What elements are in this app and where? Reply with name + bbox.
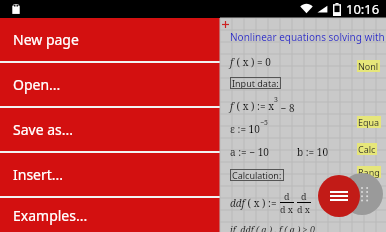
staticText: d x bbox=[297, 203, 311, 215]
staticText: Rang bbox=[358, 166, 380, 178]
button[interactable]: Menu bbox=[318, 175, 360, 217]
button[interactable]: Insert... bbox=[0, 153, 220, 196]
staticText: Insert... bbox=[13, 165, 64, 184]
staticText: − 8 bbox=[278, 101, 295, 115]
button[interactable]: Open... bbox=[0, 63, 220, 106]
staticText: a := − 10 bbox=[230, 145, 269, 159]
staticText: f bbox=[230, 55, 234, 69]
button[interactable]: Examples... bbox=[0, 198, 220, 232]
staticText: 3 bbox=[274, 95, 278, 105]
staticText: ddf bbox=[230, 196, 245, 210]
staticText: b := 10 bbox=[297, 145, 328, 159]
staticText: 10:16 bbox=[346, 0, 380, 18]
staticText: d bbox=[301, 190, 307, 202]
staticText: if ddf ( a ) . f ( a ) > 0 bbox=[230, 223, 316, 232]
staticText: −5 bbox=[260, 118, 268, 128]
staticText: ( x ) := bbox=[245, 196, 277, 210]
staticText: Examples... bbox=[13, 206, 88, 225]
staticText: f bbox=[230, 99, 234, 113]
staticText: ( x ) = 0 bbox=[234, 55, 271, 69]
staticText: Nonlinear equations solving with bbox=[230, 30, 385, 44]
button[interactable]: Save as... bbox=[0, 108, 220, 151]
staticText: d bbox=[284, 190, 290, 202]
staticText: Equa bbox=[358, 116, 380, 128]
staticText: ε := 10 bbox=[230, 122, 260, 136]
button[interactable]: New page bbox=[0, 18, 220, 61]
staticText: Calculation: bbox=[232, 169, 282, 181]
staticText: Nonl bbox=[358, 60, 379, 72]
staticText: Open... bbox=[13, 75, 61, 94]
staticText: ( x ) := x bbox=[234, 99, 274, 113]
staticText: d x bbox=[280, 203, 294, 215]
staticText: Input data: bbox=[232, 77, 279, 89]
staticText: Save as... bbox=[13, 120, 74, 139]
staticText: New page bbox=[13, 30, 79, 49]
button[interactable]: Keypad bbox=[341, 173, 383, 215]
staticText: Calc bbox=[358, 143, 376, 155]
